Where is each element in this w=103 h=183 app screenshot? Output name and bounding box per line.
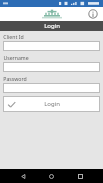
button[interactable]: App logo bbox=[39, 9, 65, 20]
button[interactable] bbox=[3, 62, 100, 72]
button[interactable]: Recent apps bbox=[75, 171, 86, 182]
staticText: Password bbox=[3, 75, 27, 82]
staticText: Login bbox=[44, 100, 60, 108]
button[interactable]: Submit bbox=[3, 96, 100, 112]
button[interactable]: Home bbox=[46, 171, 57, 182]
staticText: Username bbox=[3, 54, 29, 61]
other: Submit bbox=[7, 100, 16, 109]
button[interactable]: Info bbox=[88, 9, 98, 19]
button[interactable] bbox=[3, 41, 100, 51]
staticText: Client Id bbox=[3, 33, 24, 40]
staticText: Login bbox=[44, 22, 60, 30]
button[interactable]: Back bbox=[18, 171, 29, 182]
button[interactable]: Login bbox=[0, 21, 103, 31]
button[interactable] bbox=[3, 83, 100, 93]
